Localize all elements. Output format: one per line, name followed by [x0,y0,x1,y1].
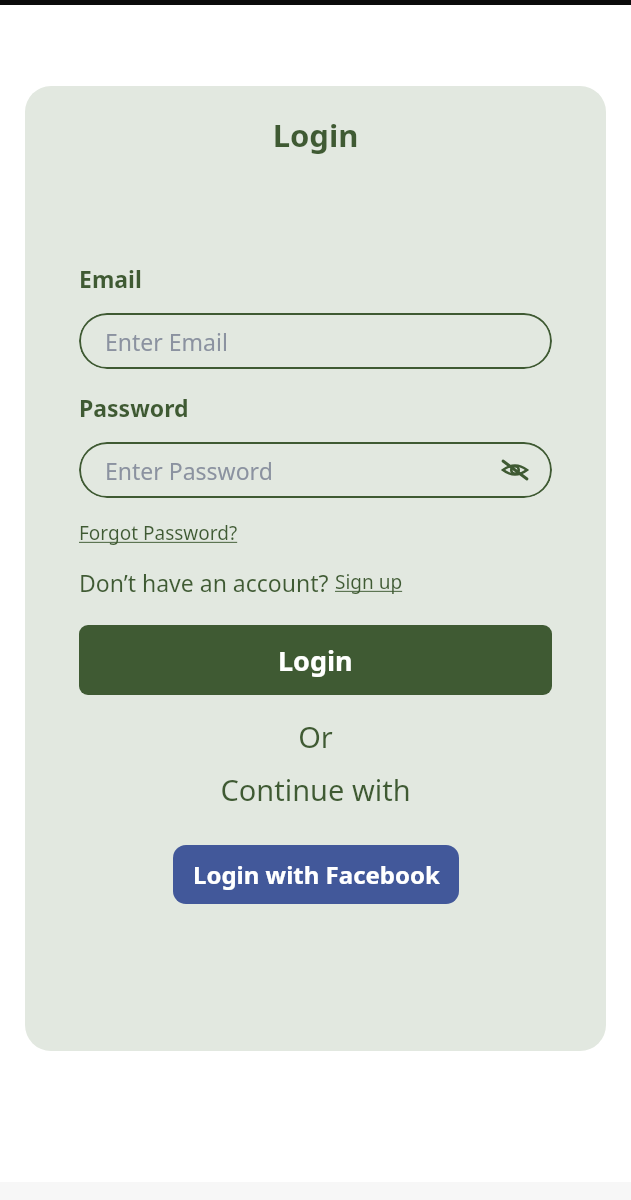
staticText: Enter Email [105,326,228,357]
button[interactable]: Sign up [335,569,403,595]
button[interactable]: Login with Facebook [173,845,459,904]
staticText: Forgot Password? [79,520,238,546]
staticText: Login with Facebook [193,858,440,891]
button[interactable]: Login [79,625,552,695]
staticText: Sign up [335,569,403,595]
staticText: Continue with [79,770,552,809]
button[interactable]: Enter Password [79,442,552,498]
staticText: Login [25,114,606,156]
button[interactable]: Forgot Password? [79,520,238,546]
staticText: Login [278,642,353,679]
staticText: Email [79,263,142,294]
staticText: Enter Password [105,455,273,486]
staticText: Don’t have an account? [79,567,335,598]
staticText: Password [79,392,189,423]
button[interactable]: Enter Email [79,313,552,369]
staticText: Or [79,717,552,756]
button[interactable]: Show password [498,453,532,487]
